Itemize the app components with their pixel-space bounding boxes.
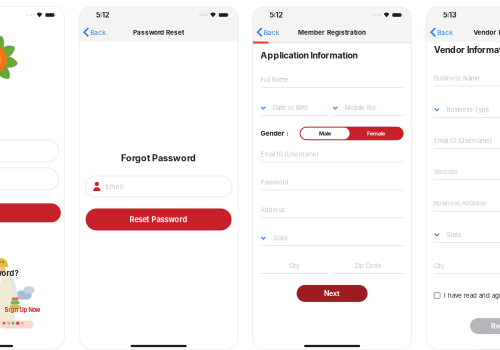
staticText: Application Information bbox=[261, 50, 358, 61]
staticText: Forgot Password? bbox=[0, 269, 19, 278]
staticText: Email bbox=[105, 183, 123, 190]
staticText: Sign Up Now bbox=[5, 307, 41, 313]
button[interactable]: Next bbox=[297, 285, 368, 302]
staticText: Gender : bbox=[261, 129, 289, 137]
staticText: Password bbox=[261, 178, 289, 186]
staticText: Date of Birth bbox=[273, 104, 309, 111]
staticText: Back bbox=[264, 28, 280, 36]
staticText: Mobile No. bbox=[345, 104, 378, 111]
staticText: City bbox=[434, 262, 444, 270]
staticText: Buisiness Name bbox=[434, 74, 480, 82]
staticText: City bbox=[289, 262, 299, 269]
staticText: Back bbox=[90, 28, 106, 36]
staticText: Email ID (Username) bbox=[434, 137, 492, 144]
staticText: Password Reset bbox=[133, 29, 184, 36]
button[interactable]: I have read and agree to the Terms bbox=[434, 291, 500, 300]
staticText: Male bbox=[319, 130, 331, 137]
staticText: Address bbox=[261, 206, 285, 214]
button[interactable]: Forgot Password? bbox=[0, 269, 19, 278]
staticText: Full Name bbox=[261, 76, 289, 83]
staticText: Back bbox=[437, 28, 453, 36]
staticText: Member Registration bbox=[298, 29, 366, 36]
staticText: I have read and agree to the Terms bbox=[444, 292, 500, 299]
staticText: Vendor Information bbox=[434, 44, 500, 55]
button[interactable]: LOGIN bbox=[0, 203, 59, 222]
button[interactable]: Reset Password bbox=[86, 208, 232, 230]
staticText: Register bbox=[491, 322, 500, 330]
staticText: State bbox=[446, 231, 461, 238]
staticText: Website bbox=[434, 168, 458, 176]
staticText: Email ID (Username) bbox=[261, 150, 319, 158]
staticText: 5:12 bbox=[96, 11, 109, 19]
button[interactable]: Sign Up Now bbox=[5, 307, 41, 313]
staticText: 5:13 bbox=[443, 11, 456, 19]
button[interactable]: Male bbox=[301, 128, 350, 139]
button[interactable]: Back bbox=[253, 23, 285, 41]
staticText: Female bbox=[367, 130, 385, 137]
button[interactable]: Register bbox=[470, 318, 500, 334]
staticText: Business Type bbox=[446, 106, 489, 113]
staticText: Business Address bbox=[434, 200, 486, 207]
button[interactable]: Back bbox=[79, 23, 111, 41]
staticText: Zip Code bbox=[355, 262, 382, 269]
staticText: Vendor Registration bbox=[474, 29, 500, 36]
staticText: Reset Password bbox=[130, 215, 188, 224]
staticText: Next bbox=[324, 289, 340, 298]
button[interactable]: Back bbox=[426, 23, 458, 41]
staticText: Forgot Password bbox=[121, 152, 196, 163]
button[interactable]: Female bbox=[350, 127, 403, 140]
staticText: 5:12 bbox=[270, 11, 283, 19]
staticText: State bbox=[273, 234, 288, 242]
